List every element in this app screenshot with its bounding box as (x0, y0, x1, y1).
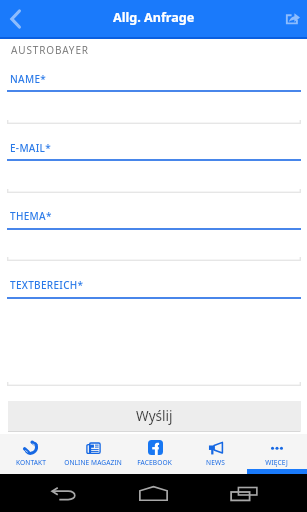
button[interactable]: Wyślij (8, 401, 301, 432)
staticText: ONLINE MAGAZIN (64, 458, 122, 467)
button[interactable]: Share (278, 0, 307, 37)
staticText: Allg. Anfrage (113, 9, 195, 26)
staticText: NEWS (206, 458, 225, 467)
button[interactable]: WIĘCEJ (246, 434, 307, 469)
button[interactable]: KONTAKT (0, 434, 62, 469)
button[interactable]: Back (44, 484, 84, 504)
staticText: TEXTBEREICH* (10, 278, 84, 292)
staticText: E-MAIL* (10, 141, 51, 155)
staticText: KONTAKT (16, 458, 46, 467)
staticText: AUSTROBAYER (11, 43, 89, 57)
button[interactable]: ONLINE MAGAZIN (62, 434, 124, 469)
staticText: NAME* (10, 72, 47, 86)
button[interactable]: Home (133, 483, 173, 504)
button[interactable]: Back (0, 0, 30, 37)
staticText: THEMA* (10, 209, 52, 223)
staticText: WIĘCEJ (265, 458, 288, 467)
button[interactable]: Recents (224, 483, 264, 504)
staticText: Wyślij (136, 406, 173, 425)
staticText: FACEBOOK (137, 458, 172, 467)
button[interactable]: FACEBOOK (124, 434, 185, 469)
button[interactable]: NEWS (185, 434, 246, 469)
